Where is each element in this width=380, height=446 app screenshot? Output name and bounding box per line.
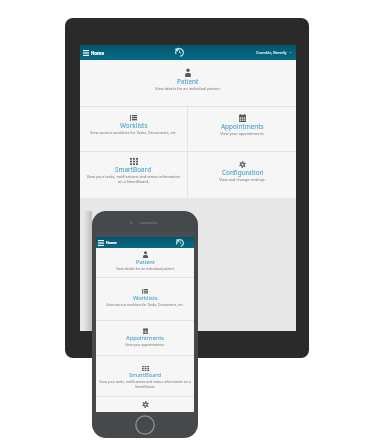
button[interactable]: Menu xyxy=(96,237,106,248)
button[interactable]: History xyxy=(175,237,185,248)
staticText: Configuration xyxy=(222,168,264,177)
button[interactable]: Appointments xyxy=(96,321,194,355)
staticText: Appointments xyxy=(126,334,164,342)
button[interactable]: Settings xyxy=(96,397,194,412)
staticText: View your appointments. xyxy=(220,131,265,136)
staticText: Home xyxy=(106,240,117,245)
staticText: Worklists xyxy=(133,294,158,302)
staticText: View your tasks, notifications and statu… xyxy=(85,174,182,184)
button[interactable]: SmartBoard xyxy=(96,356,194,396)
staticText: View various worklists for Tasks, Docume… xyxy=(90,130,177,135)
button[interactable]: Menu xyxy=(80,45,91,60)
button[interactable]: History xyxy=(174,47,185,58)
button[interactable]: Crumble, Beverly xyxy=(256,50,296,55)
staticText: Patient xyxy=(177,77,199,86)
staticText: SmartBoard xyxy=(115,165,152,174)
button[interactable]: Patient xyxy=(80,60,296,106)
button[interactable]: Appointments xyxy=(188,107,296,151)
button[interactable]: Worklists xyxy=(96,278,194,320)
staticText: View details for an individual patient. xyxy=(155,86,221,91)
button[interactable]: Worklists xyxy=(80,107,187,151)
staticText: Crumble, Beverly xyxy=(256,50,287,55)
staticText: View your appointments. xyxy=(125,342,165,347)
staticText: SmartBoard xyxy=(129,371,162,379)
staticText: View various worklists for Tasks, Docume… xyxy=(106,302,184,307)
staticText: View and change settings. xyxy=(219,177,266,182)
staticText: Worklists xyxy=(120,121,148,130)
button[interactable]: SmartBoard xyxy=(80,152,187,198)
staticText: View details for an individual patient. xyxy=(116,266,175,271)
button[interactable]: Apps xyxy=(185,237,194,248)
staticText: Patient xyxy=(136,258,155,266)
staticText: View your tasks, notifications and statu… xyxy=(98,379,192,389)
staticText: Home xyxy=(91,50,105,56)
staticText: Appointments xyxy=(221,122,264,131)
button[interactable]: Configuration xyxy=(188,152,296,198)
button[interactable]: Patient xyxy=(96,248,194,277)
